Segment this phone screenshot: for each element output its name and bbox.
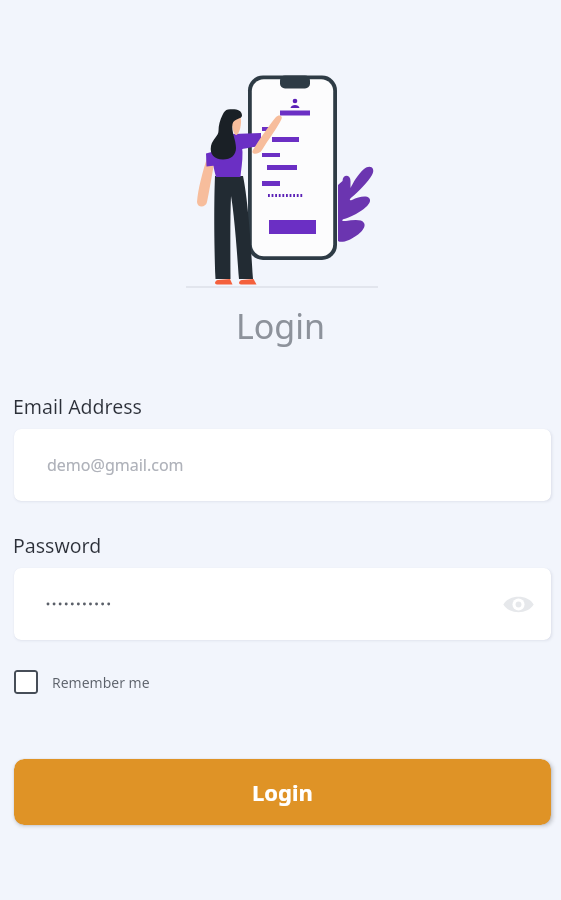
button[interactable]: demo@gmail.com — [14, 429, 551, 501]
button[interactable]: Remember me — [14, 670, 150, 694]
staticText: Login — [0, 303, 561, 349]
staticText: Login — [252, 777, 313, 807]
staticText: Remember me — [52, 673, 150, 692]
staticText: demo@gmail.com — [47, 454, 184, 476]
button[interactable]: Login — [14, 759, 551, 825]
staticText: Email Address — [13, 393, 142, 420]
staticText: Password — [13, 532, 102, 559]
button[interactable]: Show password — [14, 568, 551, 640]
button[interactable]: Show password — [498, 584, 538, 624]
